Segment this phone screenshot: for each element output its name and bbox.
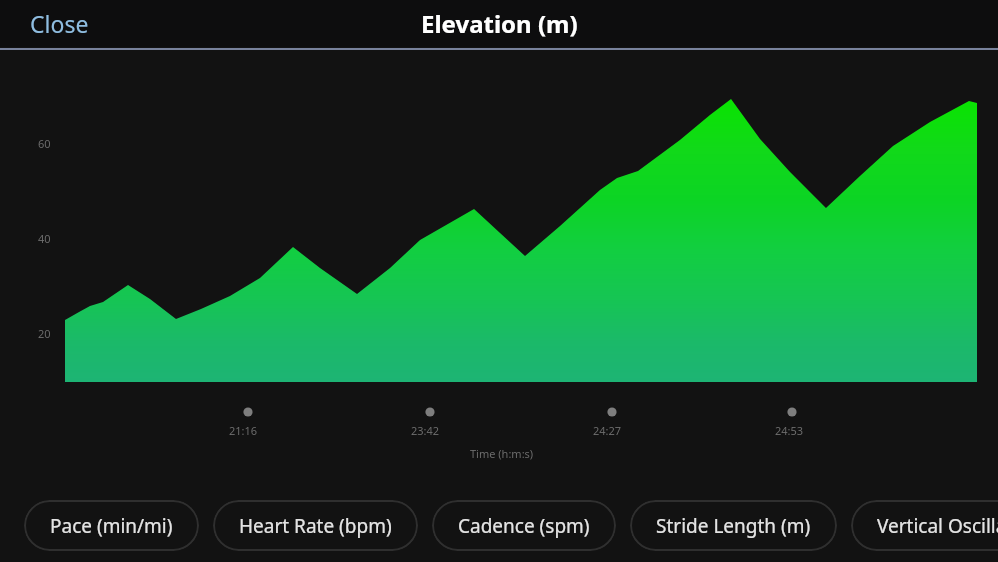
staticText: Heart Rate (bpm) — [239, 513, 392, 539]
button[interactable]: Cadence (spm) — [432, 500, 616, 551]
staticText: 60 — [38, 136, 51, 151]
staticText: 20 — [38, 326, 51, 341]
staticText: Time (h:m:s) — [470, 446, 534, 461]
staticText: 40 — [38, 231, 51, 246]
staticText: Vertical Oscillation (cm) — [877, 513, 998, 539]
button[interactable]: Vertical Oscillation (cm) — [851, 500, 998, 551]
button[interactable]: Stride Length (m) — [630, 500, 837, 551]
staticText: 21:16 — [229, 423, 258, 438]
button[interactable]: Pace (min/mi) — [24, 500, 199, 551]
staticText: 24:53 — [775, 423, 804, 438]
staticText: Elevation (m) — [421, 7, 578, 40]
staticText: Stride Length (m) — [656, 513, 811, 539]
staticText: Cadence (spm) — [458, 513, 590, 539]
staticText: 24:27 — [593, 423, 622, 438]
button[interactable]: Close — [0, 0, 119, 47]
staticText: Close — [30, 8, 89, 39]
button[interactable]: Heart Rate (bpm) — [213, 500, 418, 551]
staticText: 23:42 — [411, 423, 440, 438]
staticText: Pace (min/mi) — [50, 513, 173, 539]
